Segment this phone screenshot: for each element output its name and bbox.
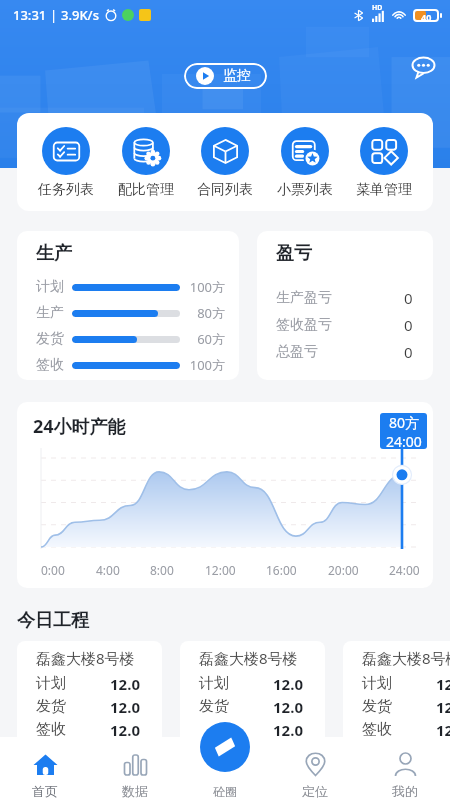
staticText: 0 (404, 342, 413, 362)
staticText: 配比管理 (118, 181, 174, 199)
button[interactable]: 小票列表 (276, 127, 334, 199)
staticText: 签收 (36, 720, 66, 739)
staticText: 12.0 (436, 697, 450, 717)
button[interactable]: 定位 (270, 737, 360, 800)
staticText: 任务列表 (38, 181, 94, 199)
staticText: 60方 (187, 330, 225, 348)
button[interactable]: 磊鑫大楼8号楼 (180, 641, 325, 745)
button[interactable]: 菜单管理 (355, 127, 413, 199)
staticText: 12.0 (436, 720, 450, 740)
button[interactable]: 我的 (360, 737, 450, 800)
staticText: 12.0 (273, 697, 303, 717)
staticText: 20:00 (328, 562, 359, 578)
staticText: 0 (404, 288, 413, 308)
button[interactable]: 砼圈 (200, 722, 250, 772)
staticText: 计划 (36, 674, 66, 693)
button[interactable]: 磊鑫大楼8号楼 (17, 641, 162, 745)
staticText: 小票列表 (277, 181, 333, 199)
button[interactable]: 合同列表 (196, 127, 254, 199)
staticText: 磊鑫大楼8号楼 (362, 648, 450, 668)
staticText: 计划 (199, 674, 229, 693)
staticText: 100方 (187, 356, 225, 374)
staticText: 16:00 (266, 562, 297, 578)
staticText: 生产 (36, 242, 72, 265)
staticText: 发货 (36, 697, 66, 716)
staticText: 首页 (32, 783, 58, 799)
staticText: 80方 (389, 413, 420, 432)
staticText: 总盈亏 (276, 343, 318, 361)
staticText: 磊鑫大楼8号楼 (36, 648, 135, 668)
staticText: 3.9K/s (61, 6, 99, 24)
staticText: 0:00 (41, 562, 65, 578)
staticText: 0 (404, 315, 413, 335)
staticText: 监控 (223, 67, 251, 85)
staticText: 签收 (362, 720, 392, 739)
button[interactable]: 磊鑫大楼8号楼 (343, 641, 450, 745)
staticText: 定位 (302, 783, 328, 799)
staticText: 生产盈亏 (276, 289, 332, 307)
button[interactable]: 监控 (184, 63, 267, 89)
staticText: 今日工程 (17, 609, 89, 632)
staticText: 计划 (362, 674, 392, 693)
staticText: 24:00 (389, 562, 420, 578)
staticText: 24小时产能 (33, 414, 126, 439)
staticText: 菜单管理 (356, 181, 412, 199)
staticText: 我的 (392, 783, 418, 799)
staticText: 发货 (199, 697, 229, 716)
staticText: | (50, 6, 58, 24)
staticText: 签收 (36, 356, 64, 374)
staticText: 40 (421, 11, 432, 20)
staticText: 100方 (187, 278, 225, 296)
staticText: 发货 (36, 330, 64, 348)
button[interactable]: 首页 (0, 737, 90, 800)
staticText: 4:00 (96, 562, 120, 578)
staticText: 合同列表 (197, 181, 253, 199)
staticText: 盈亏 (276, 242, 312, 265)
staticText: 8:00 (150, 562, 174, 578)
staticText: 24:00 (386, 432, 422, 449)
staticText: 12:00 (205, 562, 236, 578)
staticText: 计划 (36, 278, 64, 296)
staticText: 发货 (362, 697, 392, 716)
staticText: 12.0 (273, 720, 303, 740)
staticText: 80方 (187, 304, 225, 322)
button[interactable]: Messages (408, 51, 438, 81)
staticText: 砼圈 (213, 784, 237, 799)
staticText: HD (372, 3, 383, 13)
staticText: 磊鑫大楼8号楼 (199, 648, 298, 668)
staticText: 12.0 (436, 674, 450, 694)
button[interactable]: 数据 (90, 737, 180, 800)
staticText: 12.0 (110, 697, 140, 717)
staticText: 13:31 (13, 6, 47, 24)
staticText: 数据 (122, 783, 148, 799)
staticText: 签收盈亏 (276, 316, 332, 334)
staticText: 12.0 (110, 720, 140, 740)
button[interactable]: 配比管理 (117, 127, 175, 199)
staticText: 生产 (36, 304, 64, 322)
staticText: 12.0 (273, 674, 303, 694)
button[interactable]: 任务列表 (37, 127, 95, 199)
staticText: 12.0 (110, 674, 140, 694)
staticText: 签收 (199, 720, 229, 739)
